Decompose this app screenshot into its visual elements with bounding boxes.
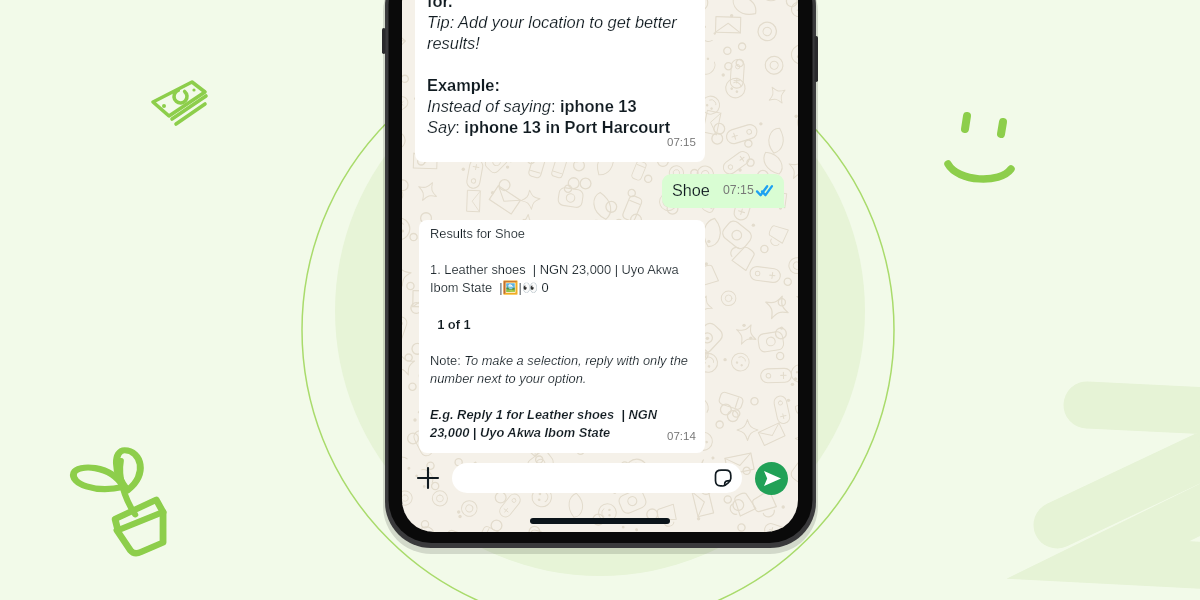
button[interactable]: Send <box>755 462 788 495</box>
staticText: 07:14 <box>667 430 696 443</box>
button[interactable] <box>452 463 742 493</box>
staticText: 07:15 <box>667 136 696 149</box>
staticText: Kindly tell us what you are looking for.… <box>427 0 696 136</box>
button[interactable]: Attach <box>412 462 444 494</box>
staticText: 07:15 <box>723 183 754 197</box>
staticText: Shoe <box>672 181 710 199</box>
staticText: Results for Shoe 1. Leather shoes | NGN … <box>430 226 696 439</box>
